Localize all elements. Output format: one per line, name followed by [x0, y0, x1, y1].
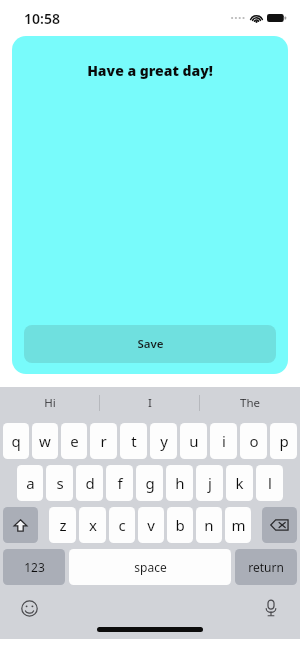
button[interactable]: u [180, 423, 207, 459]
staticText: r [100, 431, 107, 451]
staticText: v [147, 515, 155, 535]
button[interactable]: Shift [3, 507, 38, 543]
button[interactable]: Dictation [258, 595, 284, 621]
button[interactable]: Emoji [16, 595, 42, 621]
staticText: t [131, 431, 137, 451]
button[interactable]: m [225, 507, 251, 543]
staticText: The [240, 395, 260, 411]
staticText: q [11, 431, 21, 451]
button[interactable]: p [270, 423, 297, 459]
staticText: space [134, 559, 167, 575]
staticText: Save [137, 336, 164, 352]
button[interactable]: The [200, 387, 300, 419]
button[interactable]: j [196, 465, 223, 501]
staticText: 123 [24, 559, 45, 575]
button[interactable]: b [167, 507, 193, 543]
staticText: o [249, 431, 259, 451]
staticText: w [39, 431, 51, 451]
staticText: p [279, 431, 289, 451]
button[interactable]: w [32, 423, 58, 459]
staticText: n [204, 515, 214, 535]
staticText: I [148, 395, 152, 411]
button[interactable]: a [17, 465, 43, 501]
staticText: h [175, 473, 185, 493]
button[interactable]: y [150, 423, 177, 459]
staticText: s [56, 473, 64, 493]
staticText: e [70, 431, 79, 451]
staticText: x [89, 515, 97, 535]
staticText: k [235, 473, 244, 493]
staticText: Hi [44, 395, 56, 411]
staticText: return [248, 559, 284, 575]
button[interactable]: n [196, 507, 222, 543]
button[interactable]: g [136, 465, 163, 501]
button[interactable]: I [100, 387, 200, 419]
button[interactable]: l [256, 465, 283, 501]
staticText: Have a great day! [87, 61, 213, 80]
button[interactable]: t [120, 423, 147, 459]
button[interactable]: Backspace [262, 507, 297, 543]
button[interactable]: e [61, 423, 87, 459]
staticText: c [118, 515, 126, 535]
staticText: z [59, 515, 67, 535]
staticText: y [160, 431, 168, 451]
staticText: d [85, 473, 95, 493]
button[interactable]: o [240, 423, 267, 459]
staticText: j [208, 473, 212, 493]
button[interactable]: i [210, 423, 237, 459]
staticText: b [175, 515, 185, 535]
button[interactable]: r [90, 423, 117, 459]
button[interactable]: Hi [0, 387, 100, 419]
button[interactable]: Save [24, 325, 276, 363]
button[interactable]: x [79, 507, 106, 543]
button[interactable]: d [76, 465, 103, 501]
staticText: 10:58 [24, 9, 60, 28]
staticText: l [268, 473, 272, 493]
button[interactable]: h [166, 465, 193, 501]
button[interactable]: z [49, 507, 76, 543]
button[interactable]: s [46, 465, 73, 501]
staticText: m [231, 515, 246, 535]
button[interactable]: space [69, 549, 231, 585]
button[interactable]: f [106, 465, 133, 501]
staticText: u [189, 431, 199, 451]
staticText: i [222, 431, 226, 451]
button[interactable]: v [138, 507, 164, 543]
staticText: a [26, 473, 35, 493]
button[interactable]: return [235, 549, 297, 585]
button[interactable]: k [226, 465, 253, 501]
button[interactable]: q [3, 423, 29, 459]
staticText: f [117, 473, 123, 493]
button[interactable]: 123 [3, 549, 65, 585]
button[interactable]: c [109, 507, 135, 543]
staticText: g [145, 473, 155, 493]
